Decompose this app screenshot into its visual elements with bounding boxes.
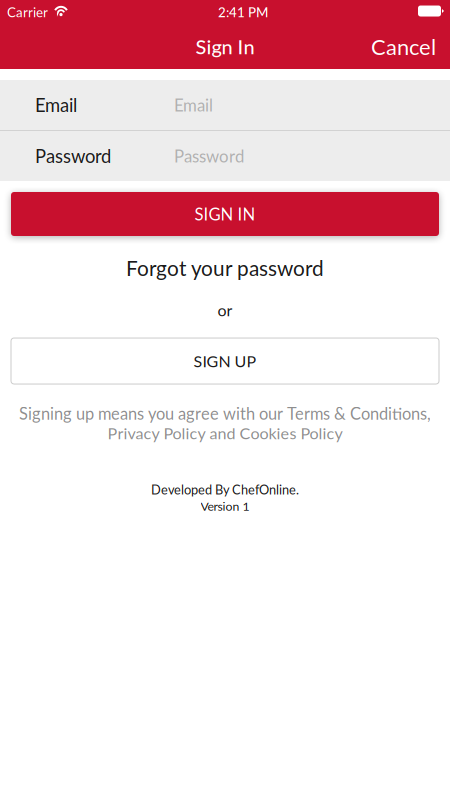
staticText: Forgot your password xyxy=(126,255,324,280)
staticText: Privacy Policy and Cookies Policy xyxy=(107,423,342,443)
staticText: Email xyxy=(174,95,213,115)
staticText: Sign In xyxy=(195,34,254,58)
staticText: Password xyxy=(35,145,111,167)
staticText: or xyxy=(217,300,232,320)
staticText: Cancel xyxy=(371,33,436,60)
staticText: Carrier xyxy=(7,4,48,20)
button[interactable]: SIGN IN xyxy=(11,192,439,236)
staticText: Signing up means you agree with our Term… xyxy=(19,404,431,423)
staticText: SIGN UP xyxy=(193,351,256,371)
staticText: Password xyxy=(174,146,244,166)
staticText: Version 1 xyxy=(200,499,249,513)
button[interactable]: Email xyxy=(0,80,450,130)
button[interactable]: SIGN UP xyxy=(11,338,439,384)
button[interactable]: Password xyxy=(0,131,450,181)
button[interactable]: Forgot your password xyxy=(126,256,324,280)
staticText: 2:41 PM xyxy=(218,4,268,20)
staticText: Email xyxy=(35,94,77,116)
staticText: Developed By ChefOnline. xyxy=(151,482,299,497)
button[interactable]: Cancel xyxy=(355,24,450,69)
staticText: SIGN IN xyxy=(194,204,255,224)
